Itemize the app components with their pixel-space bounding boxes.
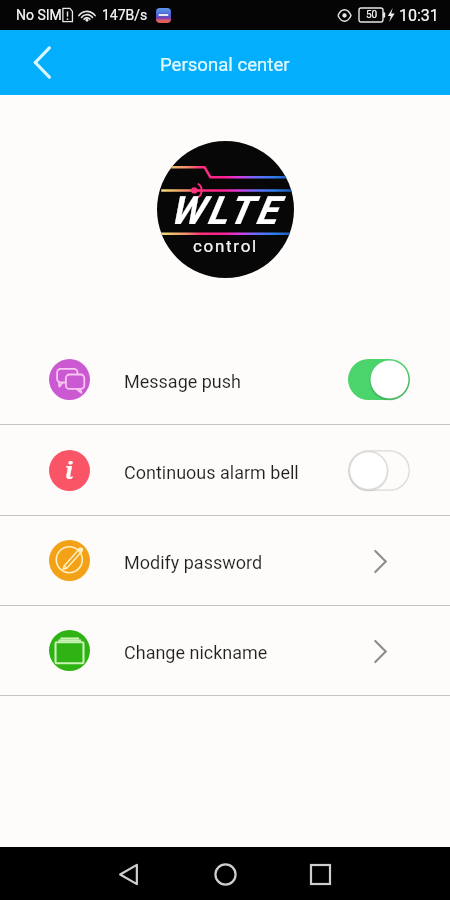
staticText: Message push: [124, 371, 241, 392]
button[interactable]: Home: [202, 851, 248, 897]
staticText: Modify password: [124, 552, 263, 573]
staticText: WLTE: [170, 188, 282, 234]
staticText: Change nickname: [124, 642, 268, 663]
button[interactable]: Back: [105, 851, 151, 897]
button[interactable]: Open: [365, 546, 395, 576]
button[interactable]: Message push: [0, 335, 450, 424]
staticText: 10:31: [399, 6, 439, 25]
button[interactable]: i: [0, 425, 450, 515]
staticText: control: [193, 236, 258, 256]
staticText: Personal center: [160, 54, 290, 76]
button[interactable]: Open: [365, 636, 395, 666]
button[interactable]: Off: [348, 450, 410, 491]
staticText: Continuous alarm bell: [124, 462, 299, 483]
button[interactable]: On: [348, 359, 410, 400]
staticText: 50: [366, 9, 378, 21]
button[interactable]: Change nickname: [0, 606, 450, 695]
button[interactable]: Modify password: [0, 516, 450, 605]
staticText: No SIM: [16, 7, 62, 23]
button[interactable]: Back: [14, 30, 70, 95]
button[interactable]: Recent apps: [297, 851, 343, 897]
staticText: i: [65, 454, 74, 485]
staticText: 147B/s: [102, 7, 148, 23]
